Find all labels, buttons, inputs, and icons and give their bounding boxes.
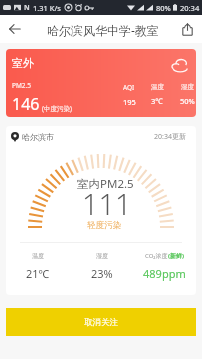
staticText: 195 [123, 97, 136, 107]
staticText: 20:34更新 [154, 132, 186, 142]
staticText: 21℃ [26, 266, 50, 281]
button[interactable]: 取消关注 [6, 308, 196, 336]
staticText: 80% [156, 3, 171, 13]
staticText: 3℃ [151, 96, 163, 106]
staticText: (新鲜) [168, 252, 185, 260]
button[interactable]: 室外 [6, 49, 196, 117]
staticText: 温度 [151, 83, 164, 91]
staticText: AQI [123, 83, 135, 92]
staticText: 湿度 [96, 252, 108, 260]
staticText: 23% [91, 266, 113, 281]
staticText: 哈尔滨市 [22, 132, 54, 142]
staticText: 取消关注 [84, 317, 118, 328]
staticText: (中度污染) [42, 104, 72, 113]
button[interactable]: Back [0, 15, 30, 43]
staticText: 50% [180, 96, 195, 106]
staticText: 室内PM2.5 [77, 176, 134, 192]
staticText: CO₂浓度 [145, 252, 168, 260]
staticText: 489ppm [143, 266, 186, 281]
staticText: 哈尔滨风华中学-教室 [47, 22, 159, 38]
staticText: 1.31 K/s [33, 3, 61, 13]
staticText: 温度 [32, 252, 44, 260]
staticText: 20:34 [180, 3, 200, 13]
staticText: 室外 [12, 56, 34, 70]
staticText: 146 [12, 93, 40, 115]
staticText: 轻度污染 [87, 220, 121, 231]
staticText: PM2.5 [12, 81, 32, 90]
staticText: N [24, 3, 30, 13]
staticText: 111 [82, 184, 132, 223]
staticText: 湿度 [181, 83, 194, 91]
button[interactable]: Share [173, 15, 201, 43]
